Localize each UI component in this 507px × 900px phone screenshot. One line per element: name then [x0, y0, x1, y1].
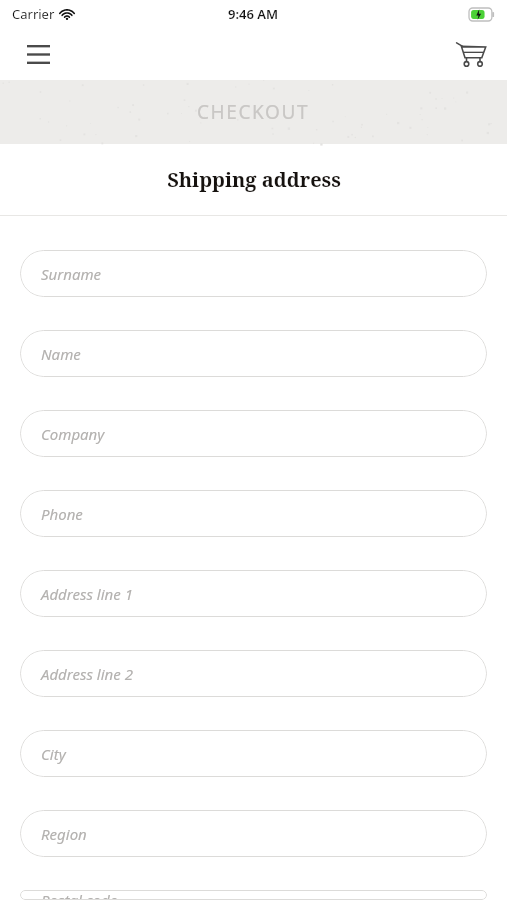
staticText: Postal code	[41, 890, 118, 900]
staticText: Surname	[41, 264, 102, 284]
button[interactable]: Region	[20, 810, 487, 857]
button[interactable]: Company	[20, 410, 487, 457]
button[interactable]: Name	[20, 330, 487, 377]
button[interactable]: City	[20, 730, 487, 777]
staticText: Carrier	[12, 5, 55, 23]
staticText: CHECKOUT	[197, 99, 310, 125]
staticText: City	[41, 744, 66, 764]
staticText: Region	[41, 824, 87, 844]
staticText: Address line 1	[41, 584, 133, 604]
button[interactable]: Cart	[449, 32, 493, 76]
staticText: Shipping address	[167, 166, 341, 193]
button[interactable]: Address line 1	[20, 570, 487, 617]
staticText: 9:46 AM	[228, 5, 279, 23]
button[interactable]: Menu	[16, 32, 60, 76]
staticText: Name	[41, 344, 81, 364]
staticText: Address line 2	[41, 664, 133, 684]
button[interactable]: Phone	[20, 490, 487, 537]
staticText: Phone	[41, 504, 83, 524]
button[interactable]: Surname	[20, 250, 487, 297]
staticText: Company	[41, 424, 105, 444]
button[interactable]: Postal code	[20, 890, 487, 900]
button[interactable]: Address line 2	[20, 650, 487, 697]
